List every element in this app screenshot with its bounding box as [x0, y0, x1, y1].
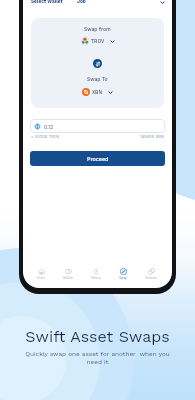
button[interactable]: Home [29, 268, 53, 279]
staticText: Home [29, 276, 53, 279]
staticText: = 0.1200 TROV [31, 134, 60, 139]
staticText: 145500 XBN [140, 134, 164, 139]
staticText: Swift Asset Swaps [25, 327, 170, 346]
button[interactable]: Job [77, 0, 165, 5]
staticText: Job [77, 0, 86, 5]
staticText: Select Wallet [31, 0, 63, 5]
staticText: Quickly swap one asset for another when … [24, 350, 171, 366]
button[interactable]: Wallets [56, 268, 80, 279]
button[interactable]: 0.12 [30, 119, 165, 133]
button[interactable]: Swap [111, 268, 135, 279]
button[interactable]: Proceed [30, 151, 165, 166]
staticText: Wallets [56, 276, 80, 279]
button[interactable]: Swap direction [93, 59, 102, 68]
button[interactable]: Tokenize [139, 268, 163, 279]
button[interactable]: TROV [81, 37, 115, 45]
button[interactable]: XBN [82, 88, 113, 96]
button[interactable]: History [84, 268, 108, 279]
staticText: Swap [111, 276, 135, 279]
staticText: Swap from [84, 26, 111, 32]
staticText: Proceed [87, 156, 109, 162]
staticText: 0.12 [44, 124, 54, 130]
staticText: TROV [91, 38, 105, 44]
staticText: XBN [92, 89, 103, 95]
staticText: Tokenize [139, 276, 163, 279]
staticText: Swap To [87, 76, 108, 82]
staticText: History [84, 276, 108, 279]
